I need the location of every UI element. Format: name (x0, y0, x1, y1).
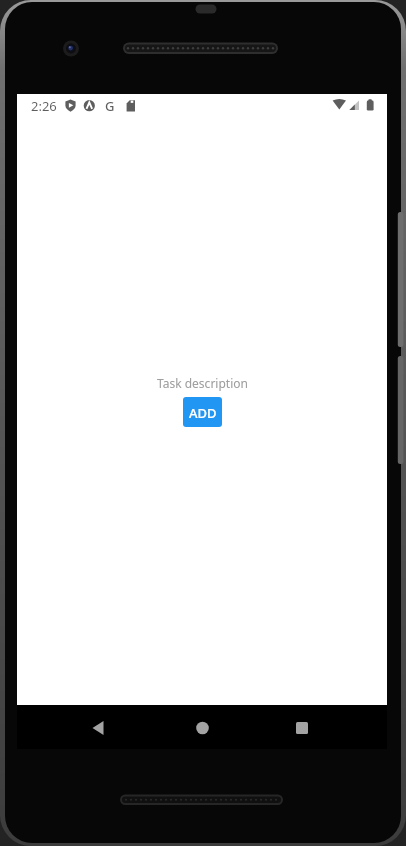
button[interactable] (141, 705, 264, 749)
button[interactable]: Task description (157, 375, 248, 391)
button[interactable] (17, 705, 141, 749)
staticText: Task description (157, 375, 248, 391)
button[interactable] (264, 705, 387, 749)
button[interactable]: ADD (183, 397, 222, 427)
staticText: 2:26 (31, 97, 57, 115)
staticText: G (105, 97, 115, 115)
staticText: ADD (189, 404, 217, 422)
